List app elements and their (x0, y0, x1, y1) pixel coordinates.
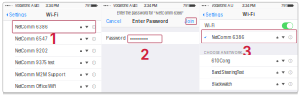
staticText: i (290, 70, 291, 74)
staticText: vodafone AU (211, 3, 233, 8)
staticText: Settings (205, 12, 222, 17)
staticText: 79% (183, 3, 191, 8)
staticText: Wi-Fi (46, 12, 58, 18)
staticText: NetComm 6386 (211, 35, 244, 40)
button[interactable]: NetComm 6386 (200, 31, 298, 43)
staticText: 3:34 PM (46, 3, 59, 8)
staticText: NetComm 6547 (15, 36, 47, 41)
staticText: NetComm 9375 test (15, 60, 54, 65)
staticText: NetComm Office WiFi (15, 84, 56, 89)
staticText: vodafone AU (15, 3, 37, 8)
staticText: 610Cong (211, 58, 230, 63)
button[interactable]: Blackwatch (200, 78, 298, 90)
staticText: Blackwatch (211, 82, 231, 87)
button[interactable]: BandSteeringTest (200, 67, 298, 78)
staticText: Wi-Fi (242, 12, 254, 17)
button[interactable]: NetComm 6547 (3, 33, 101, 45)
button[interactable]: NetComm 9375 test (3, 57, 101, 69)
staticText: Join (184, 19, 194, 24)
button[interactable]: 610Cong (200, 55, 298, 67)
staticText: 1 (50, 30, 56, 47)
button[interactable]: Wi-Fi (282, 22, 293, 29)
staticText: i (290, 59, 291, 63)
button[interactable]: NetComm 6386 (3, 21, 101, 33)
button[interactable]: Settings (3, 8, 28, 21)
staticText: CHOOSE A NETWORK... (204, 50, 245, 55)
staticText: 79% (85, 3, 93, 8)
staticText: BandSteeringTest (211, 70, 243, 75)
staticText: Password (106, 36, 126, 41)
staticText: 4G (34, 3, 39, 8)
staticText: 2 (140, 46, 149, 63)
staticText: Cancel (106, 19, 121, 24)
staticText: 3:34 PM (144, 3, 157, 8)
staticText: NetComm 9202 (15, 48, 48, 53)
staticText: Enter the password for “NetComm 6386” (117, 11, 184, 15)
button[interactable]: Settings (200, 8, 225, 21)
button[interactable]: NetComm Office WiFi (3, 80, 101, 92)
staticText: 4G (133, 3, 138, 8)
button[interactable]: NetComm M2M Support (3, 69, 101, 80)
staticText: Enter Password (132, 19, 168, 24)
staticText: ••••••••• (130, 36, 148, 41)
button[interactable]: NetComm 9202 (3, 45, 101, 57)
button[interactable]: Cancel (106, 17, 128, 26)
staticText: NetComm 6386 (15, 24, 48, 30)
staticText: Settings (9, 12, 26, 17)
staticText: 79% (281, 3, 289, 8)
staticText: i (290, 82, 291, 86)
staticText: Wi-Fi (204, 23, 214, 28)
staticText: 3:34 PM (242, 3, 255, 8)
staticText: vodafone AU (113, 3, 135, 8)
staticText: 3 (242, 43, 251, 60)
staticText: NetComm M2M Support (15, 72, 65, 77)
button[interactable]: Join (178, 17, 194, 26)
staticText: i (290, 35, 291, 39)
